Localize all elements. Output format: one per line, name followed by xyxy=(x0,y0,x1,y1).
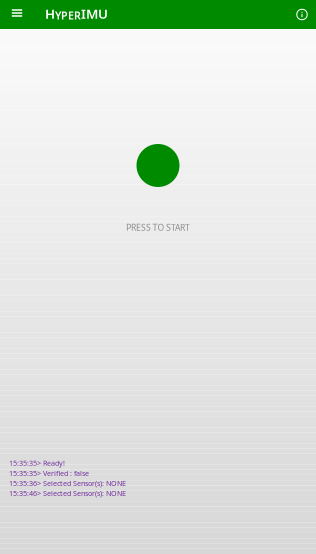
staticText: T xyxy=(152,221,157,233)
staticText: TART xyxy=(171,222,190,233)
button[interactable]: Menu xyxy=(0,0,34,29)
staticText: 15:35:35> Ready! xyxy=(9,458,65,468)
staticText: O xyxy=(157,222,164,233)
button[interactable]: Info xyxy=(290,0,314,29)
staticText: 15:35:35> Verified : false xyxy=(9,468,89,478)
staticText: 15:35:36> Selected Sensor(s): NONE xyxy=(9,478,126,488)
staticText: RESS xyxy=(131,222,151,233)
staticText: S xyxy=(166,221,171,233)
staticText: IMU xyxy=(81,4,108,23)
staticText: YPER xyxy=(55,8,81,23)
button[interactable]: Press to start xyxy=(136,144,179,187)
staticText: P xyxy=(126,221,131,233)
staticText: H xyxy=(45,4,55,23)
staticText: 15:35:46> Selected Sensor(s): NONE xyxy=(9,488,126,498)
button[interactable]: P xyxy=(0,221,316,233)
